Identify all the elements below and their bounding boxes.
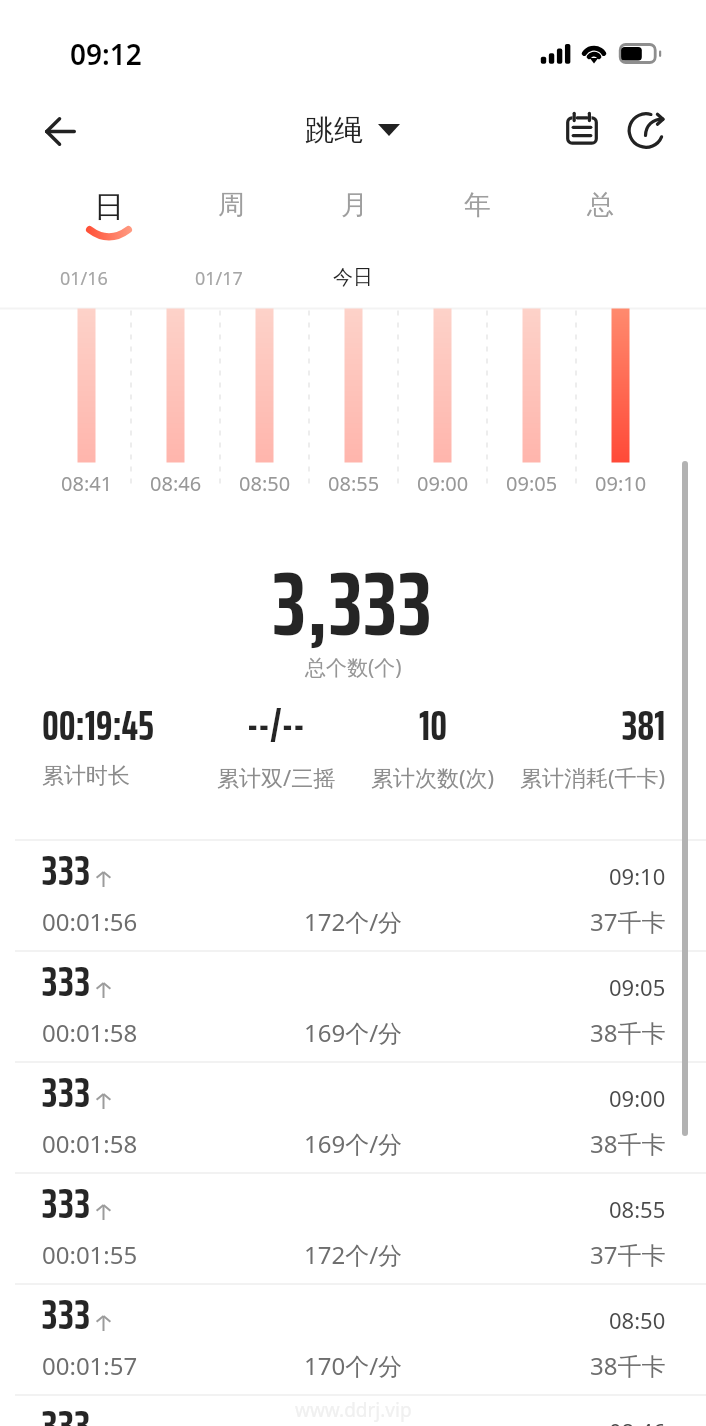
staticText: 00:01:58 <box>42 1016 138 1049</box>
staticText: 10 <box>419 692 448 758</box>
staticText: 00:01:58 <box>42 1127 138 1160</box>
button[interactable]: 跳绳 <box>295 102 400 158</box>
staticText: 172个/分 <box>304 1238 403 1271</box>
staticText: 09:12 <box>70 35 142 73</box>
staticText: 08:50 <box>239 470 291 497</box>
staticText: 170个/分 <box>304 1349 403 1382</box>
button[interactable]: 年 <box>416 188 539 246</box>
staticText: 38千卡 <box>590 1349 666 1382</box>
staticText: 01/17 <box>195 266 243 291</box>
staticText: 总个数(个) <box>305 653 402 682</box>
button[interactable]: 333 <box>0 952 706 1061</box>
button[interactable]: 333 <box>0 1396 706 1426</box>
staticText: 37千卡 <box>590 1238 666 1271</box>
button[interactable]: Share <box>616 100 676 160</box>
staticText: 381 <box>622 692 666 758</box>
staticText: 日 <box>94 188 124 226</box>
button[interactable]: 333 <box>0 1063 706 1172</box>
staticText: 年 <box>464 188 491 222</box>
staticText: 累计双/三摇 <box>217 762 336 792</box>
staticText: 169个/分 <box>304 1127 403 1160</box>
button[interactable]: 周 <box>170 188 293 246</box>
staticText: 00:01:57 <box>42 1349 138 1382</box>
staticText: 00:01:56 <box>42 905 138 938</box>
staticText: 09:05 <box>506 470 558 497</box>
staticText: 08:50 <box>609 1305 666 1335</box>
button[interactable]: 总 <box>539 188 662 246</box>
staticText: 月 <box>341 188 368 222</box>
staticText: 37千卡 <box>590 905 666 938</box>
staticText: 跳绳 <box>305 112 363 149</box>
staticText: 09:00 <box>609 1083 666 1113</box>
staticText: 08:46 <box>150 470 202 497</box>
staticText: 333 <box>42 1392 92 1426</box>
staticText: 09:10 <box>609 861 666 891</box>
button[interactable]: 10 <box>353 692 513 792</box>
staticText: --/-- <box>247 692 305 758</box>
staticText: 333 <box>42 1170 92 1236</box>
staticText: 09:05 <box>609 972 666 1002</box>
staticText: 38千卡 <box>590 1127 666 1160</box>
staticText: www.ddrj.vip <box>295 1397 412 1423</box>
staticText: 169个/分 <box>304 1016 403 1049</box>
staticText: 172个/分 <box>304 905 403 938</box>
staticText: 01/16 <box>60 266 108 291</box>
staticText: 3,333 <box>273 533 434 675</box>
staticText: 00:19:45 <box>42 692 154 758</box>
button[interactable]: 日 <box>47 188 170 246</box>
staticText: 累计次数(次) <box>371 762 495 792</box>
staticText: 08:46 <box>609 1416 666 1426</box>
staticText: 08:55 <box>609 1194 666 1224</box>
button[interactable]: 333 <box>0 1174 706 1283</box>
button[interactable]: 381 <box>506 692 666 792</box>
staticText: 333 <box>42 1059 92 1125</box>
staticText: 08:55 <box>328 470 380 497</box>
staticText: 09:00 <box>417 470 469 497</box>
staticText: 今日 <box>333 265 373 290</box>
staticText: 累计消耗(千卡) <box>520 762 666 792</box>
button[interactable]: 月 <box>293 188 416 246</box>
staticText: 总 <box>587 188 614 222</box>
staticText: 09:10 <box>595 470 647 497</box>
button[interactable]: 333 <box>0 1285 706 1394</box>
staticText: 08:41 <box>61 470 113 497</box>
button[interactable]: 00:19:45 <box>42 692 202 792</box>
staticText: 333 <box>42 948 92 1014</box>
button[interactable]: --/-- <box>196 692 356 792</box>
staticText: 333 <box>42 837 92 903</box>
button[interactable]: Back <box>29 101 89 161</box>
staticText: 累计时长 <box>42 762 130 790</box>
staticText: 周 <box>218 188 245 222</box>
staticText: 00:01:55 <box>42 1238 138 1271</box>
button[interactable]: 333 <box>0 841 706 950</box>
button[interactable]: Records <box>552 100 612 160</box>
staticText: 38千卡 <box>590 1016 666 1049</box>
staticText: 333 <box>42 1281 92 1347</box>
